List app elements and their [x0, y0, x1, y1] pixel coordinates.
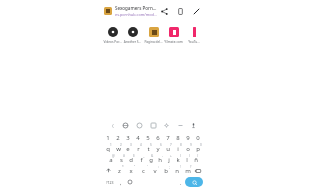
button[interactable]: w: [113, 143, 123, 154]
button[interactable]: u: [163, 143, 173, 154]
staticText: .: [180, 179, 182, 186]
button[interactable]: ?123: [103, 176, 116, 188]
button[interactable]: 1: [103, 132, 113, 143]
button[interactable]: 9: [183, 132, 193, 143]
button[interactable]: p: [193, 143, 203, 154]
staticText: 3: [130, 143, 132, 147]
button[interactable]: c: [137, 165, 149, 176]
button[interactable]: x: [125, 165, 137, 176]
button[interactable]: a: [106, 154, 116, 165]
button[interactable]: v: [149, 165, 160, 176]
staticText: *: [122, 165, 124, 169]
button[interactable]: Expand: [108, 121, 117, 130]
button[interactable]: 6: [153, 132, 163, 143]
button[interactable]: q: [103, 143, 113, 154]
button[interactable]: b: [160, 165, 171, 176]
button[interactable]: t: [143, 143, 153, 154]
button[interactable]: z: [113, 165, 125, 176]
button[interactable]: Emoji: [125, 176, 134, 188]
button[interactable]: k: [173, 154, 182, 165]
button[interactable]: Settings: [162, 121, 171, 130]
button[interactable]: Backspace: [193, 165, 203, 176]
button[interactable]: m: [182, 165, 193, 176]
button[interactable]: n: [171, 165, 182, 176]
staticText: h: [158, 156, 162, 164]
button[interactable]: .: [177, 176, 185, 188]
staticText: k: [176, 156, 180, 164]
button[interactable]: Share: [159, 6, 170, 17]
button[interactable]: Y3mate.com: [164, 26, 183, 45]
staticText: 0: [200, 143, 202, 147]
staticText: !: [180, 165, 181, 169]
button[interactable]: Voice input: [189, 121, 198, 130]
button[interactable]: Copy to clipboard: [175, 6, 186, 17]
staticText: ñ: [194, 156, 198, 164]
staticText: e: [126, 145, 130, 153]
button[interactable]: ñ: [191, 154, 200, 165]
button[interactable]: Clipboard: [149, 121, 158, 130]
button[interactable]: 0: [193, 132, 203, 143]
staticText: Another Sub...: [123, 40, 142, 44]
button[interactable]: d: [126, 154, 136, 165]
staticText: a: [109, 156, 113, 164]
staticText: YouTu...: [188, 40, 200, 44]
button[interactable]: 8: [173, 132, 183, 143]
staticText: 1: [110, 143, 112, 147]
button[interactable]: l: [182, 154, 191, 165]
staticText: 2: [120, 143, 122, 147]
button[interactable]: f: [136, 154, 146, 165]
button[interactable]: Theme: [176, 121, 185, 130]
staticText: u: [166, 145, 170, 153]
staticText: t: [147, 145, 150, 153]
button[interactable]: g: [146, 154, 155, 165]
staticText: 8: [180, 143, 182, 147]
button[interactable]: h: [155, 154, 164, 165]
button[interactable]: j: [164, 154, 173, 165]
button[interactable]: o: [183, 143, 193, 154]
button[interactable]: i: [173, 143, 183, 154]
button[interactable]: YouTu...: [184, 26, 203, 45]
button[interactable]: 5: [143, 132, 153, 143]
staticText: q: [106, 145, 110, 153]
button[interactable]: Stickers: [135, 121, 144, 130]
staticText: ": [134, 165, 136, 169]
staticText: 7: [166, 134, 170, 142]
button[interactable]: Shift: [103, 165, 113, 176]
staticText: ': [147, 165, 148, 169]
staticText: p: [196, 145, 200, 153]
button[interactable]: 2: [113, 132, 123, 143]
staticText: $: [133, 154, 135, 158]
staticText: z: [118, 167, 121, 175]
staticText: #: [123, 154, 125, 158]
button[interactable]: r: [133, 143, 143, 154]
staticText: _: [143, 154, 145, 158]
staticText: Pagina del u...: [144, 40, 163, 44]
button[interactable]: Search: [185, 177, 203, 187]
button[interactable]: y: [153, 143, 163, 154]
staticText: 0: [196, 134, 200, 142]
button[interactable]: Pagina del u...: [144, 26, 163, 45]
button[interactable]: 4: [133, 132, 143, 143]
button[interactable]: Edit: [191, 6, 202, 17]
button[interactable]: s: [116, 154, 126, 165]
button[interactable]: Emoji / GIF: [121, 121, 130, 130]
staticText: Y3mate.com: [164, 40, 183, 44]
staticText: j: [168, 156, 170, 164]
staticText: 5: [146, 134, 150, 142]
staticText: 3: [126, 134, 130, 142]
staticText: b: [164, 167, 168, 175]
staticText: &: [151, 154, 154, 158]
button[interactable]: 7: [163, 132, 173, 143]
staticText: d: [129, 156, 133, 164]
button[interactable]: 3: [123, 132, 133, 143]
staticText: ?: [190, 165, 192, 169]
button[interactable]: ,: [116, 176, 125, 188]
button[interactable]: e: [123, 143, 133, 154]
button[interactable]: Videos Por...: [103, 26, 122, 45]
staticText: +: [170, 154, 172, 158]
button[interactable]: Another Sub...: [123, 26, 142, 45]
staticText: 7: [170, 143, 172, 147]
staticText: 9: [190, 143, 192, 147]
staticText: ;: [169, 165, 170, 169]
